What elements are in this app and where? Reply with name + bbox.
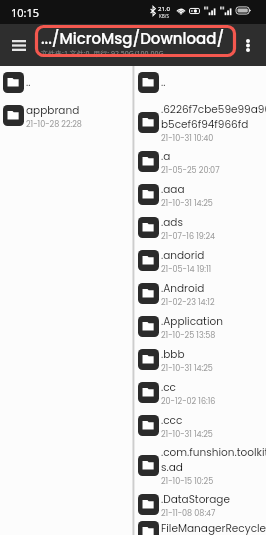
button[interactable]: .a bbox=[135, 145, 266, 178]
button[interactable]: .cc bbox=[135, 376, 266, 409]
button[interactable]: .Android bbox=[135, 277, 266, 310]
staticText: .a bbox=[161, 149, 171, 164]
staticText: .Android bbox=[161, 281, 205, 296]
staticText: 21.0 bbox=[158, 5, 170, 13]
staticText: .. bbox=[161, 75, 166, 90]
staticText: 21-10-31 14:25 bbox=[161, 363, 213, 374]
button[interactable]: FileManagerRecycle bbox=[135, 521, 266, 535]
button[interactable]: .DataStorage bbox=[135, 488, 266, 521]
button[interactable]: .ccc bbox=[135, 409, 266, 442]
button[interactable]: .bbb bbox=[135, 343, 266, 376]
staticText: 21-05-14 19:11 bbox=[161, 264, 212, 275]
staticText: b5cef6f94f966fd bbox=[161, 117, 249, 132]
staticText: .ads bbox=[161, 215, 183, 230]
staticText: .cc bbox=[161, 380, 176, 395]
staticText: FileManagerRecycle bbox=[161, 521, 266, 535]
staticText: 文件夹:1 文件:0 用行: 92.50G/100.00G bbox=[41, 49, 164, 59]
staticText: 21-10-15 10:25 bbox=[161, 476, 214, 487]
staticText: .../MicroMsg/Download/ bbox=[41, 28, 225, 49]
staticText: .com.funshion.toolkit bbox=[161, 445, 266, 460]
staticText: appbrand bbox=[26, 103, 80, 118]
staticText: 21-02-23 14:12 bbox=[161, 297, 215, 308]
button[interactable]: .aaa bbox=[135, 178, 266, 211]
staticText: 21-10-25 13:58 bbox=[161, 330, 216, 341]
staticText: .bbb bbox=[161, 347, 185, 362]
staticText: 21-10-28 22:28 bbox=[26, 119, 82, 130]
staticText: s.ad bbox=[161, 460, 183, 475]
button[interactable]: .com.funshion.toolkit bbox=[135, 442, 266, 488]
button[interactable]: .. bbox=[0, 66, 132, 99]
staticText: 21-11-08 08:47 bbox=[161, 508, 216, 519]
button[interactable]: .Application bbox=[135, 310, 266, 343]
staticText: 21-10-31 10:40 bbox=[161, 133, 214, 144]
staticText: .DataStorage bbox=[161, 492, 230, 507]
staticText: .6226f7cbe59e99a90 bbox=[161, 102, 266, 117]
staticText: .ccc bbox=[161, 413, 183, 428]
staticText: 10:15 bbox=[11, 5, 40, 20]
staticText: .aaa bbox=[161, 182, 185, 197]
staticText: 21-10-31 14:25 bbox=[161, 198, 213, 209]
staticText: .. bbox=[26, 75, 31, 90]
button[interactable]: .6226f7cbe59e99a90 bbox=[135, 99, 266, 145]
staticText: .Application bbox=[161, 314, 223, 329]
button[interactable]: More options bbox=[235, 32, 261, 58]
button[interactable]: .ads bbox=[135, 211, 266, 244]
staticText: 20-12-02 16:16 bbox=[161, 396, 216, 407]
staticText: 21-10-31 14:25 bbox=[161, 429, 213, 440]
staticText: KB/S bbox=[159, 13, 169, 19]
button[interactable]: appbrand bbox=[0, 99, 132, 132]
staticText: 21-07-16 19:24 bbox=[161, 231, 216, 242]
staticText: .andorid bbox=[161, 248, 205, 263]
button[interactable]: .andorid bbox=[135, 244, 266, 277]
button[interactable]: Menu bbox=[5, 31, 33, 59]
button[interactable]: .. bbox=[135, 66, 266, 99]
staticText: 21-05-25 20:07 bbox=[161, 165, 220, 176]
